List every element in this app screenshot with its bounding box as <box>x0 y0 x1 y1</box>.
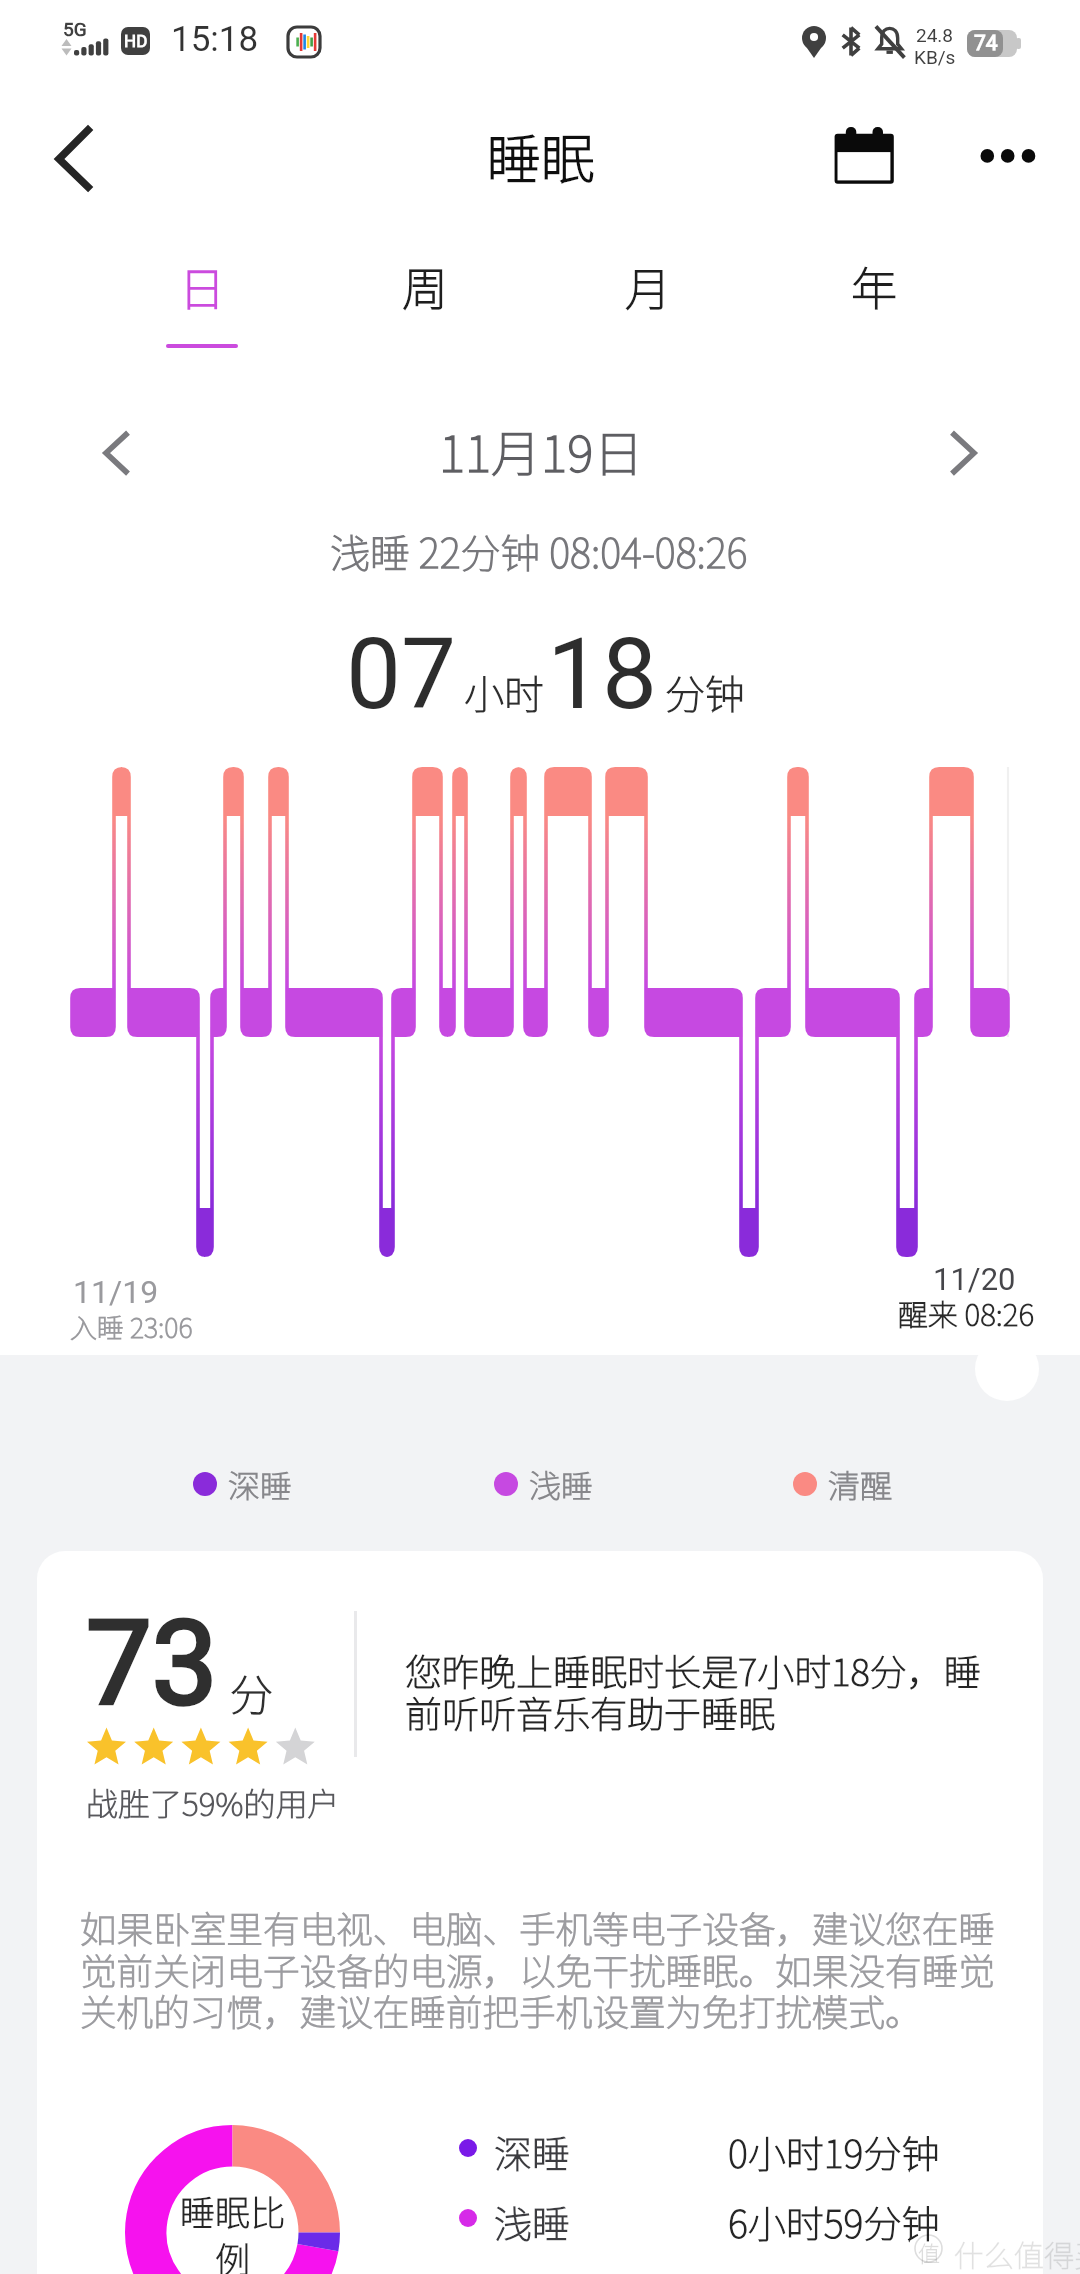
button[interactable]: More options <box>962 112 1054 200</box>
staticText: 睡眠 <box>487 116 595 194</box>
staticText: 6小时59分钟 <box>728 2194 940 2249</box>
button[interactable]: 浅睡 <box>494 1461 594 1507</box>
staticText: 15:18 <box>171 19 259 60</box>
staticText: KB/s <box>914 46 956 68</box>
button[interactable]: 73 <box>37 1551 1043 2274</box>
staticText: 分 <box>230 1661 273 1723</box>
button[interactable]: 周 <box>337 232 513 362</box>
button[interactable]: Next day <box>918 410 1004 496</box>
staticText: 深睡 <box>494 2124 571 2179</box>
staticText: 如果卧室里有电视、电脑、手机等电子设备，建议您在睡觉前关闭电子设备的电源，以免干… <box>80 1901 1002 2036</box>
button[interactable]: Back <box>30 108 122 204</box>
staticText: 什么值得买 <box>954 2232 1080 2274</box>
staticText: 0小时19分钟 <box>728 2124 940 2179</box>
staticText: 您昨晚上睡眠时长是7小时18分，睡前听听音乐有助于睡眠 <box>405 1643 983 1739</box>
staticText: 年 <box>851 253 897 320</box>
staticText: HD <box>124 31 148 51</box>
staticText: 日 <box>179 253 225 320</box>
button[interactable]: Previous day <box>76 410 162 496</box>
staticText: 值 <box>918 2236 941 2268</box>
button[interactable]: 清醒 <box>793 1461 893 1507</box>
staticText: 11/20 <box>933 1261 1016 1297</box>
button[interactable]: Calendar <box>818 120 910 208</box>
staticText: 浅睡 22分钟 08:04-08:26 <box>330 522 748 580</box>
staticText: 醒来 08:26 <box>898 1291 1035 1334</box>
staticText: 73 <box>86 1595 218 1732</box>
staticText: 入睡 23:06 <box>70 1307 193 1346</box>
staticText: 74 <box>974 31 998 56</box>
button[interactable]: 年 <box>786 232 962 362</box>
button[interactable]: 日 <box>114 232 290 362</box>
staticText: 月 <box>625 253 671 320</box>
button[interactable]: Drag handle <box>975 1337 1039 1401</box>
staticText: 18 <box>547 617 658 732</box>
staticText: 24.8 <box>916 24 954 46</box>
staticText: 5G <box>63 18 87 40</box>
staticText: 分钟 <box>665 663 745 721</box>
staticText: 深睡 <box>228 1461 293 1507</box>
staticText: 11/19 <box>73 1273 159 1311</box>
staticText: 战胜了59%的用户 <box>86 1779 340 1825</box>
staticText: 小时 <box>464 663 544 721</box>
staticText: 07 <box>346 617 457 732</box>
button[interactable]: 深睡 <box>193 1461 293 1507</box>
staticText: 浅睡 <box>494 2194 571 2249</box>
staticText: 浅睡 <box>529 1461 594 1507</box>
button[interactable]: 月 <box>560 232 736 362</box>
staticText: 周 <box>402 253 448 320</box>
staticText: 11月19日 <box>439 414 644 486</box>
staticText: 睡眠比 例 <box>125 2185 340 2274</box>
staticText: 清醒 <box>828 1461 893 1507</box>
